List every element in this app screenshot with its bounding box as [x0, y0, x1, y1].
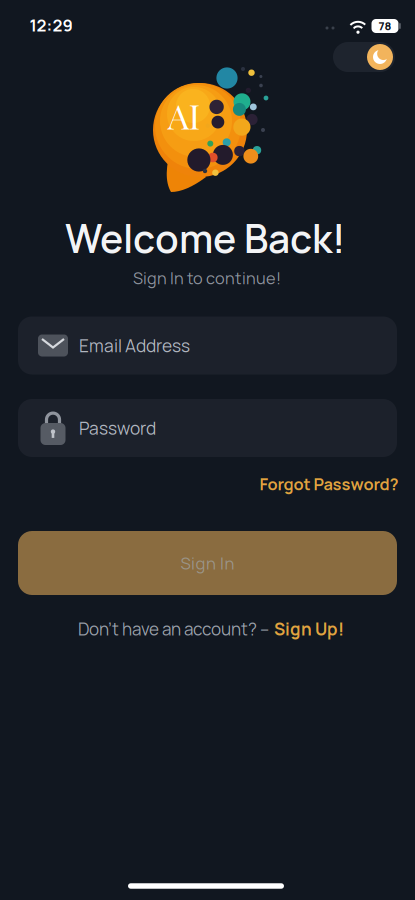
staticText: AI: [167, 92, 200, 138]
staticText: Sign In: [180, 552, 234, 574]
staticText: Sign Up!: [274, 617, 344, 641]
staticText: Email Address: [79, 334, 190, 357]
staticText: 12:29: [29, 14, 72, 36]
staticText: Forgot Password?: [259, 473, 398, 495]
button[interactable]: Password: [18, 399, 397, 457]
staticText: Password: [79, 416, 156, 440]
staticText: 78: [378, 18, 391, 33]
staticText: Welcome Back!: [65, 211, 345, 265]
button[interactable]: Dark mode: [333, 42, 395, 72]
button[interactable]: Forgot Password?: [259, 473, 398, 495]
button[interactable]: Sign In: [18, 531, 397, 595]
button[interactable]: Email Address: [18, 316, 397, 374]
button[interactable]: Sign Up!: [274, 617, 344, 641]
staticText: Don't have an account? –: [78, 617, 269, 641]
staticText: Sign In to continue!: [133, 267, 281, 289]
